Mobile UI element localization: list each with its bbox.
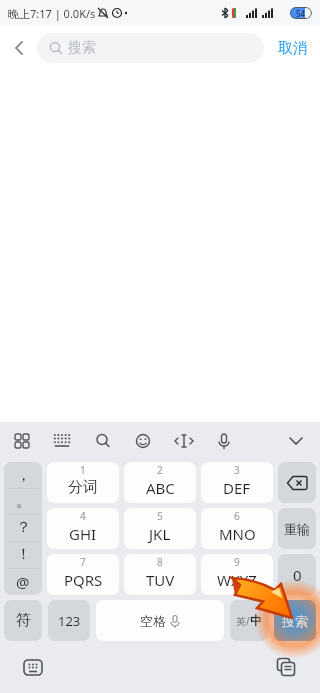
- staticText: 分词: [68, 478, 98, 497]
- button[interactable]: [168, 422, 200, 462]
- button[interactable]: 符: [4, 600, 42, 641]
- staticText: 6: [234, 509, 240, 523]
- button[interactable]: [280, 422, 312, 462]
- staticText: 3: [234, 463, 240, 477]
- staticText: 4: [80, 509, 86, 523]
- button[interactable]: [127, 422, 159, 462]
- button[interactable]: 9: [201, 554, 273, 595]
- staticText: MNO: [219, 524, 256, 544]
- button[interactable]: 英/: [230, 600, 268, 641]
- button[interactable]: 2: [124, 462, 196, 503]
- staticText: ，: [16, 466, 31, 485]
- button[interactable]: [276, 657, 296, 677]
- staticText: 空格: [140, 613, 166, 629]
- staticText: WXYZ: [217, 570, 257, 590]
- staticText: 搜索: [282, 613, 308, 629]
- button[interactable]: 123: [48, 600, 90, 641]
- button[interactable]: 取消: [278, 39, 308, 58]
- button[interactable]: 6: [201, 508, 273, 549]
- staticText: 9: [234, 555, 240, 569]
- button[interactable]: [23, 657, 43, 677]
- button[interactable]: [208, 422, 240, 462]
- staticText: 5: [157, 509, 163, 523]
- button[interactable]: [6, 422, 38, 462]
- staticText: 中: [250, 613, 262, 628]
- staticText: 符: [16, 611, 31, 630]
- staticText: 54: [296, 8, 306, 19]
- button[interactable]: 8: [124, 554, 196, 595]
- staticText: PQRS: [64, 570, 103, 590]
- button[interactable]: 5: [124, 508, 196, 549]
- button[interactable]: 4: [47, 508, 119, 549]
- staticText: 搜索: [68, 39, 96, 57]
- button[interactable]: [10, 39, 28, 57]
- button[interactable]: 空格: [96, 600, 224, 641]
- button[interactable]: 搜索: [274, 600, 316, 641]
- staticText: 取消: [278, 39, 308, 58]
- staticText: GHI: [69, 524, 97, 544]
- staticText: 123: [58, 612, 81, 630]
- staticText: 晚上7:17 | 0.0K/s: [8, 6, 96, 21]
- button[interactable]: [46, 422, 78, 462]
- staticText: 英/: [236, 614, 250, 628]
- staticText: DEF: [223, 478, 251, 498]
- staticText: 1: [80, 463, 86, 477]
- staticText: TUV: [146, 570, 175, 590]
- staticText: 。: [16, 492, 31, 511]
- button[interactable]: ，: [4, 462, 42, 595]
- button[interactable]: 1: [47, 462, 119, 503]
- staticText: 重输: [284, 521, 310, 537]
- staticText: ABC: [146, 478, 175, 498]
- button[interactable]: [278, 462, 316, 503]
- button[interactable]: 7: [47, 554, 119, 595]
- staticText: 7: [80, 555, 86, 569]
- staticText: 8: [157, 555, 163, 569]
- staticText: @: [16, 572, 30, 592]
- staticText: JKL: [149, 524, 171, 544]
- staticText: 2: [157, 463, 163, 477]
- staticText: 0: [293, 565, 302, 585]
- button[interactable]: 重输: [278, 508, 316, 549]
- staticText: ？: [16, 518, 31, 537]
- button[interactable]: [86, 422, 118, 462]
- button[interactable]: 搜索: [37, 33, 264, 63]
- staticText: ！: [16, 545, 31, 564]
- button[interactable]: 3: [201, 462, 273, 503]
- button[interactable]: 0: [278, 554, 316, 595]
